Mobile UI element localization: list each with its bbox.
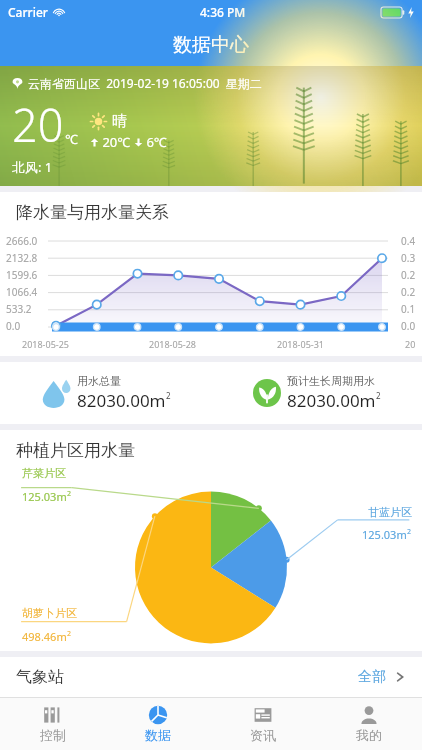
staticText: 降水量与用水量关系	[16, 202, 169, 223]
staticText: Carrier	[8, 4, 48, 20]
staticText: 数据中心	[173, 33, 249, 57]
button[interactable]: 预计生长周期用水	[211, 362, 422, 424]
staticText: 种植片区用水量	[16, 440, 135, 461]
staticText: ℃	[65, 130, 78, 148]
staticText: 20℃	[99, 133, 134, 151]
staticText: 预计生长周期用水	[287, 374, 375, 388]
staticText: 资讯	[250, 727, 276, 743]
staticText: 498.46m	[22, 629, 67, 644]
staticText: 2018-05-25	[22, 338, 69, 350]
staticText: 芹菜片区	[22, 466, 66, 480]
staticText: 533.2	[6, 302, 32, 316]
staticText: 胡萝卜片区	[22, 606, 77, 620]
staticText: 晴	[112, 112, 127, 131]
button[interactable]: 我的	[316, 698, 422, 750]
staticText: 2	[376, 390, 381, 401]
staticText: 用水总量	[77, 374, 121, 388]
staticText: 125.03m	[22, 489, 67, 504]
staticText: 1599.6	[6, 268, 38, 282]
staticText: 2018-05-28	[149, 338, 196, 350]
staticText: 82030.00m	[287, 389, 376, 412]
staticText: 数据	[145, 727, 171, 743]
staticText: 全部	[358, 668, 386, 686]
staticText: 0.4	[401, 234, 416, 248]
staticText: 北风: 1	[12, 158, 53, 176]
staticText: 2018-05-31	[277, 338, 324, 350]
staticText: 控制	[40, 727, 66, 743]
staticText: 20	[12, 94, 64, 155]
staticText: 4:36 PM	[200, 4, 246, 20]
staticText: 0.3	[401, 251, 416, 265]
staticText: 1066.4	[6, 285, 38, 299]
staticText: 云南省西山区 2019-02-19 16:05:00 星期二	[28, 75, 262, 91]
staticText: 甘蓝片区	[368, 505, 412, 519]
staticText: 125.03m	[362, 527, 407, 542]
button[interactable]: 用水总量	[0, 362, 211, 424]
staticText: 0.1	[401, 302, 416, 316]
staticText: 我的	[356, 727, 382, 743]
staticText: 2	[67, 629, 72, 639]
staticText: 2	[407, 527, 412, 537]
staticText: 0.0	[401, 319, 416, 333]
staticText: 20	[405, 338, 416, 350]
button[interactable]: 资讯	[210, 698, 316, 750]
staticText: 0.0	[6, 319, 21, 333]
staticText: 2666.0	[6, 234, 38, 248]
staticText: 0.2	[401, 285, 416, 299]
staticText: 2132.8	[6, 251, 38, 265]
button[interactable]: 控制	[0, 698, 105, 750]
staticText: 0.2	[401, 268, 416, 282]
button[interactable]: 数据	[105, 698, 210, 750]
staticText: 气象站	[16, 667, 64, 687]
staticText: 6℃	[143, 133, 167, 151]
button[interactable]: 气象站	[0, 657, 422, 697]
staticText: 2	[67, 489, 72, 499]
other: 查看全部气象站	[394, 671, 406, 683]
staticText: 2	[166, 390, 171, 401]
staticText: 82030.00m	[77, 389, 166, 412]
